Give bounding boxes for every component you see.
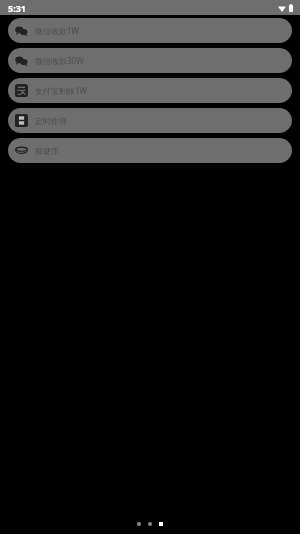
staticText: 掷硬币 [35, 146, 59, 156]
staticText: 微信收款1W [35, 25, 80, 36]
staticText: 5:31 [8, 2, 26, 14]
staticText: 支付宝到账1W [35, 85, 88, 96]
button[interactable]: Back [137, 522, 141, 526]
staticText: 定时炸弹 [35, 116, 67, 126]
button[interactable]: 定时炸弹 [8, 108, 292, 133]
button[interactable]: 微信收款30W [8, 48, 292, 73]
button[interactable]: Home [148, 522, 152, 526]
staticText: 微信收款30W [35, 55, 84, 66]
button[interactable]: 微信收款1W [8, 18, 292, 43]
button[interactable]: 掷硬币 [8, 138, 292, 163]
button[interactable]: 支付宝到账1W [8, 78, 292, 103]
